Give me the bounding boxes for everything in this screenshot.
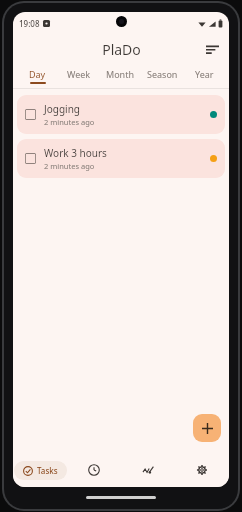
staticText: Season <box>147 68 178 80</box>
button[interactable]: Week <box>58 64 99 88</box>
button[interactable]: Toggle Jogging <box>25 109 36 120</box>
button[interactable]: Day <box>17 64 58 88</box>
button[interactable]: Tasks <box>14 461 67 480</box>
staticText: Week <box>67 68 91 80</box>
staticText: Tasks <box>37 465 58 476</box>
staticText: Month <box>106 68 134 80</box>
button[interactable]: Statistics <box>121 453 175 487</box>
button[interactable]: Toggle Work 3 hours <box>17 139 225 178</box>
button[interactable]: Settings <box>175 453 229 487</box>
button[interactable]: History <box>67 453 121 487</box>
staticText: 2 minutes ago <box>44 117 95 127</box>
staticText: Year <box>195 68 214 80</box>
staticText: 2 minutes ago <box>44 161 95 171</box>
button[interactable]: Toggle Jogging <box>17 95 225 134</box>
staticText: PlaDo <box>102 40 141 59</box>
button[interactable]: Year <box>183 64 225 88</box>
staticText: Work 3 hours <box>44 146 107 160</box>
button[interactable]: Month <box>99 64 141 88</box>
button[interactable]: Season <box>141 64 183 88</box>
button[interactable]: Toggle Work 3 hours <box>25 153 36 164</box>
staticText: Day <box>29 68 46 80</box>
staticText: Jogging <box>44 102 80 116</box>
button[interactable]: Sort <box>201 38 223 60</box>
button[interactable]: Add task <box>193 414 221 442</box>
staticText: 19:08 <box>19 18 40 29</box>
